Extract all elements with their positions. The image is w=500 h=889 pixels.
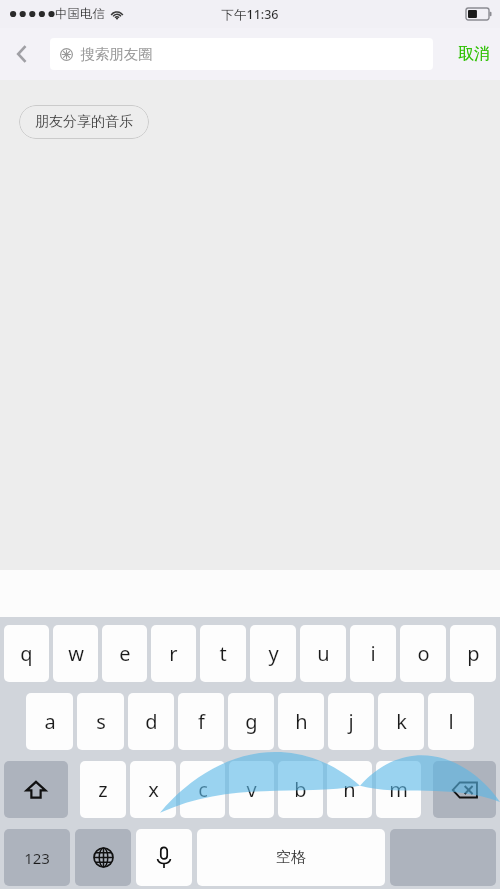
button[interactable]: Voice input bbox=[136, 829, 192, 886]
button[interactable]: u bbox=[300, 625, 346, 682]
staticText: a bbox=[44, 708, 56, 735]
button[interactable]: 123 bbox=[4, 829, 70, 886]
button[interactable]: m bbox=[376, 761, 421, 818]
button[interactable]: w bbox=[53, 625, 98, 682]
button[interactable]: j bbox=[328, 693, 374, 750]
staticText: 朋友分享的音乐 bbox=[35, 113, 133, 131]
staticText: k bbox=[396, 708, 407, 735]
staticText: v bbox=[246, 776, 257, 803]
staticText: t bbox=[219, 640, 227, 667]
staticText: w bbox=[68, 640, 84, 667]
button[interactable]: 取消 bbox=[448, 28, 500, 80]
button[interactable]: 朋友分享的音乐 bbox=[19, 105, 149, 139]
staticText: m bbox=[389, 776, 408, 803]
button[interactable]: q bbox=[4, 625, 49, 682]
button[interactable]: t bbox=[200, 625, 246, 682]
button[interactable]: r bbox=[151, 625, 196, 682]
staticText: z bbox=[98, 776, 108, 803]
staticText: 空格 bbox=[276, 848, 306, 867]
staticText: q bbox=[20, 640, 33, 667]
staticText: s bbox=[96, 708, 106, 735]
staticText: f bbox=[198, 708, 205, 735]
button[interactable]: v bbox=[229, 761, 274, 818]
button[interactable]: Delete bbox=[433, 761, 496, 818]
staticText: i bbox=[370, 640, 376, 667]
button[interactable]: Switch language bbox=[75, 829, 131, 886]
staticText: j bbox=[348, 708, 354, 735]
button[interactable]: b bbox=[278, 761, 323, 818]
button[interactable]: y bbox=[250, 625, 296, 682]
button[interactable]: p bbox=[450, 625, 496, 682]
button[interactable]: e bbox=[102, 625, 147, 682]
button[interactable]: Shift bbox=[4, 761, 68, 818]
button[interactable]: a bbox=[26, 693, 73, 750]
button[interactable]: Back bbox=[0, 28, 44, 80]
staticText: 取消 bbox=[458, 44, 490, 64]
button[interactable]: 空格 bbox=[197, 829, 385, 886]
button[interactable]: f bbox=[178, 693, 224, 750]
staticText: h bbox=[295, 708, 308, 735]
button[interactable]: i bbox=[350, 625, 396, 682]
staticText: u bbox=[317, 640, 330, 667]
staticText: n bbox=[343, 776, 356, 803]
staticText: 123 bbox=[24, 848, 50, 868]
button[interactable]: n bbox=[327, 761, 372, 818]
button[interactable]: z bbox=[80, 761, 126, 818]
staticText: b bbox=[294, 776, 307, 803]
button[interactable]: l bbox=[428, 693, 474, 750]
staticText: e bbox=[119, 640, 131, 667]
button[interactable]: s bbox=[77, 693, 124, 750]
staticText: y bbox=[268, 640, 279, 667]
staticText: d bbox=[145, 708, 158, 735]
button[interactable]: 搜索朋友圈 bbox=[50, 38, 433, 70]
button[interactable]: k bbox=[378, 693, 424, 750]
staticText: x bbox=[148, 776, 159, 803]
staticText: l bbox=[448, 708, 454, 735]
button[interactable]: c bbox=[180, 761, 225, 818]
staticText: p bbox=[467, 640, 480, 667]
staticText: 下午11:36 bbox=[221, 6, 279, 23]
staticText: 搜索朋友圈 bbox=[80, 45, 153, 63]
button[interactable]: o bbox=[400, 625, 446, 682]
staticText: o bbox=[417, 640, 430, 667]
button[interactable]: h bbox=[278, 693, 324, 750]
button[interactable]: d bbox=[128, 693, 174, 750]
staticText: 中国电信 bbox=[55, 6, 105, 22]
button[interactable]: g bbox=[228, 693, 274, 750]
staticText: g bbox=[245, 708, 258, 735]
staticText: r bbox=[169, 640, 178, 667]
button[interactable]: x bbox=[130, 761, 176, 818]
staticText: c bbox=[198, 776, 208, 803]
